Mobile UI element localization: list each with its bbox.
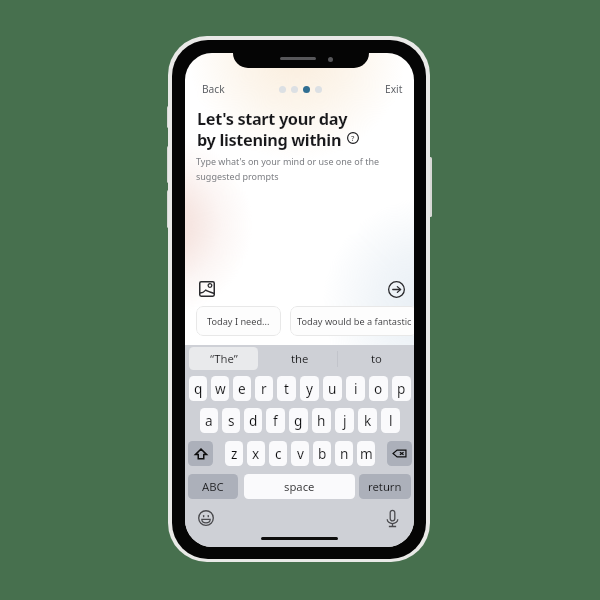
staticText: v [297,444,304,463]
button[interactable]: o [369,376,388,401]
button[interactable]: i [346,376,365,401]
button[interactable]: z [225,441,243,466]
button[interactable]: x [247,441,265,466]
button[interactable]: m [357,441,375,466]
staticText: s [228,411,235,430]
button[interactable]: Send [388,281,405,298]
button[interactable]: the [262,345,338,372]
staticText: h [317,411,326,430]
staticText: x [252,444,260,463]
staticText: d [249,411,258,430]
staticText: space [284,479,315,494]
staticText: return [368,479,402,494]
staticText: n [340,444,349,463]
staticText: Let's start your day by listening within [197,108,348,150]
button[interactable]: y [300,376,319,401]
button[interactable]: r [255,376,273,401]
button[interactable]: h [312,408,331,433]
staticText: to [371,351,382,366]
button[interactable]: Shift [188,441,213,466]
button[interactable]: t [277,376,296,401]
staticText: e [238,379,246,398]
button[interactable]: v [291,441,309,466]
staticText: the [291,351,309,366]
staticText: a [205,411,213,430]
button[interactable]: Exit [385,82,403,96]
staticText: w [215,379,226,398]
staticText: o [374,379,383,398]
button[interactable]: j [335,408,354,433]
staticText: f [273,411,278,430]
staticText: Today I need... [207,315,270,328]
button[interactable]: space [244,474,355,499]
button[interactable]: b [313,441,331,466]
staticText: z [231,444,238,463]
staticText: j [343,411,347,430]
button[interactable]: s [222,408,240,433]
button[interactable]: w [211,376,229,401]
staticText: b [318,444,327,463]
button[interactable]: a [200,408,218,433]
staticText: y [306,379,313,398]
staticText: ABC [202,479,224,494]
button[interactable]: f [266,408,285,433]
button[interactable]: Help [347,132,359,144]
staticText: m [360,444,373,463]
button[interactable]: to [338,345,414,372]
button[interactable]: c [269,441,287,466]
staticText: q [194,379,203,398]
button[interactable]: Back [202,82,225,96]
button[interactable]: Today I need... [196,306,281,336]
staticText: r [261,379,267,398]
button[interactable]: Dictate [387,510,398,527]
staticText: k [364,411,372,430]
button[interactable]: Backspace [387,441,412,466]
button[interactable]: n [335,441,353,466]
button[interactable]: “The” [189,347,258,370]
staticText: Type what's on your mind or use one of t… [196,155,380,182]
staticText: Today would be a fantastic [297,315,412,328]
button[interactable]: d [244,408,262,433]
button[interactable]: ABC [188,474,238,499]
staticText: ? [351,133,355,143]
button[interactable]: Add image [199,281,215,297]
button[interactable]: p [392,376,411,401]
staticText: c [275,444,282,463]
staticText: t [284,379,289,398]
staticText: g [294,411,303,430]
button[interactable]: q [189,376,207,401]
staticText: l [389,411,393,430]
button[interactable]: u [323,376,342,401]
staticText: u [328,379,337,398]
button[interactable]: g [289,408,308,433]
button[interactable]: Emoji [198,510,214,526]
staticText: p [397,379,406,398]
staticText: Back [202,82,225,96]
button[interactable]: e [233,376,251,401]
button[interactable]: k [358,408,377,433]
staticText: “The” [210,351,238,366]
button[interactable]: l [381,408,400,433]
button[interactable]: Today would be a fantastic [290,306,414,336]
staticText: i [354,379,358,398]
staticText: Exit [385,82,403,96]
button[interactable]: return [359,474,411,499]
